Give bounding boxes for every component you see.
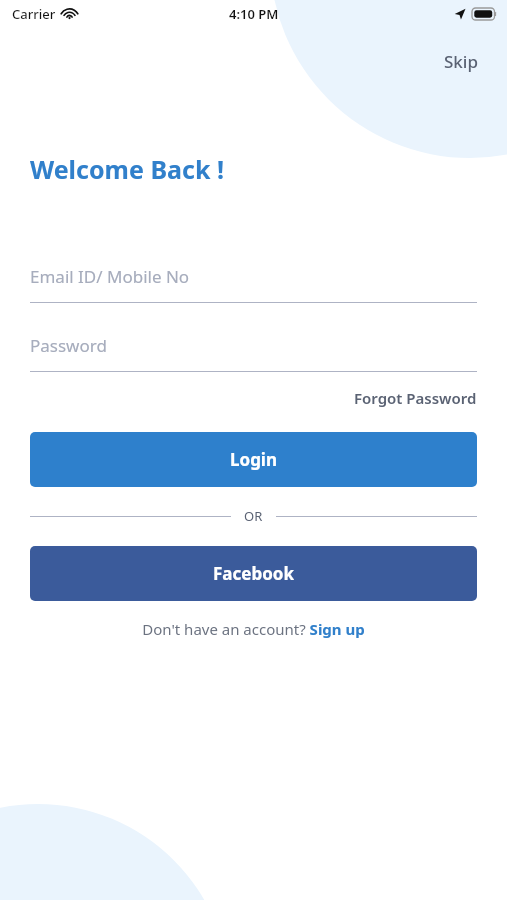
button[interactable]: Facebook	[30, 546, 477, 601]
staticText: OR	[244, 507, 263, 525]
staticText: Login	[230, 448, 278, 471]
staticText: Forgot Password	[354, 388, 477, 408]
button[interactable]: Password	[30, 329, 477, 361]
staticText: Carrier	[12, 5, 56, 23]
staticText: 4:10 PM	[229, 5, 279, 23]
staticText: Welcome Back !	[30, 152, 224, 186]
button[interactable]: Login	[30, 432, 477, 487]
staticText: Don't have an account? Sign up	[142, 619, 365, 639]
staticText: Email ID/ Mobile No	[30, 265, 190, 288]
staticText: Facebook	[213, 562, 294, 585]
staticText: Skip	[444, 50, 478, 73]
button[interactable]: Skip	[433, 44, 489, 79]
staticText: Password	[30, 334, 107, 357]
button[interactable]: Email ID/ Mobile No	[30, 260, 477, 292]
button[interactable]: Forgot Password	[346, 384, 485, 412]
button[interactable]: Don't have an account? Sign up	[136, 615, 371, 643]
